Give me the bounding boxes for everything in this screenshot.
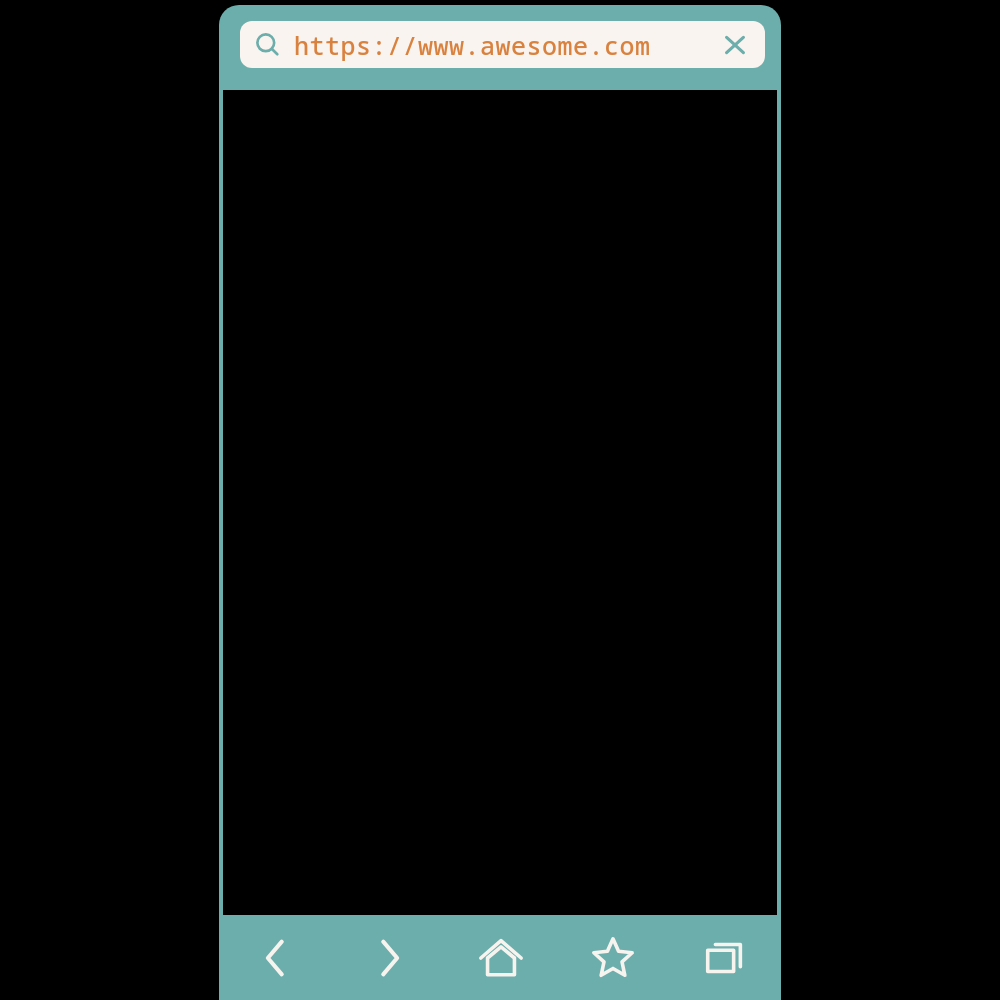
button[interactable]: Tabs [669, 915, 781, 1000]
button[interactable]: Bookmarks [557, 915, 669, 1000]
button[interactable]: Back [219, 915, 332, 1000]
staticText: https://www.awesome.com [294, 28, 651, 62]
button[interactable]: Close [713, 23, 757, 67]
button[interactable]: Forward [332, 915, 445, 1000]
button[interactable]: Home [445, 915, 557, 1000]
button[interactable]: https://www.awesome.com [240, 21, 765, 68]
